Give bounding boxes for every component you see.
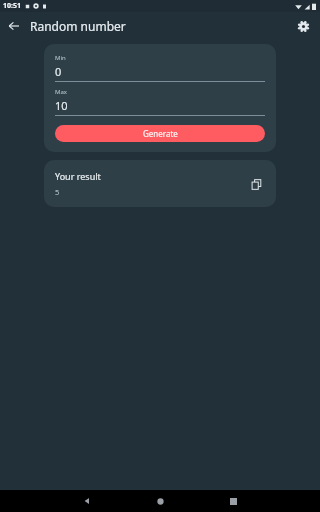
button[interactable]: Home [149, 490, 171, 512]
button[interactable]: Back [0, 12, 28, 40]
staticText: Generate [143, 128, 178, 139]
staticText: Max [55, 88, 67, 96]
button[interactable]: Min [55, 54, 265, 82]
staticText: 0 [55, 64, 62, 79]
staticText: 10 [55, 98, 68, 113]
staticText: Random number [30, 18, 126, 34]
staticText: 5 [55, 187, 60, 197]
button[interactable]: Your result [44, 160, 276, 207]
staticText: Your result [55, 170, 101, 182]
button[interactable]: Generate [55, 125, 265, 142]
button[interactable]: Copy result [247, 175, 265, 193]
staticText: Min [55, 54, 66, 62]
button[interactable]: Recent apps [222, 490, 244, 512]
button[interactable]: Max [55, 88, 265, 116]
staticText: 10:51 [3, 1, 21, 11]
button[interactable]: Back [76, 490, 98, 512]
button[interactable]: Settings [291, 14, 315, 38]
